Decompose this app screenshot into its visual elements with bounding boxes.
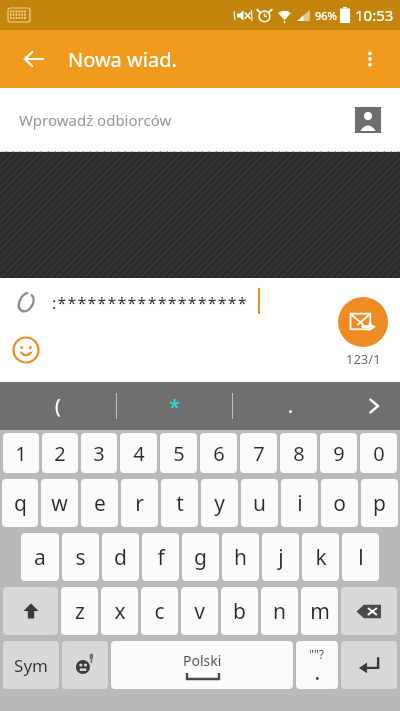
staticText: 6 <box>213 440 225 467</box>
staticText: m <box>310 597 330 626</box>
staticText: 10:53 <box>355 5 394 25</box>
staticText: . <box>315 662 320 685</box>
button[interactable]: d <box>102 533 139 581</box>
button[interactable]: s <box>62 533 99 581</box>
staticText: a <box>34 543 46 572</box>
staticText: ""? <box>309 646 325 662</box>
button[interactable]: w <box>41 479 78 527</box>
button[interactable]: y <box>201 479 238 527</box>
button[interactable]: 2 <box>42 433 78 473</box>
button[interactable]: m <box>301 587 338 635</box>
staticText: 96% <box>315 8 337 23</box>
button[interactable]: Attach <box>4 281 48 325</box>
staticText: 123/1 <box>346 350 381 368</box>
button[interactable]: x <box>101 587 138 635</box>
staticText: 8 <box>293 440 305 467</box>
button[interactable]: 5 <box>160 433 197 473</box>
button[interactable]: Send message <box>338 297 388 347</box>
staticText: n <box>273 597 286 626</box>
button[interactable]: z <box>61 587 98 635</box>
button[interactable]: u <box>241 479 278 527</box>
button[interactable]: Space <box>111 641 293 689</box>
button[interactable]: e <box>81 479 118 527</box>
button[interactable]: Emoji <box>4 328 48 372</box>
button[interactable]: . <box>233 382 348 430</box>
button[interactable]: Backspace <box>341 587 397 635</box>
button[interactable]: 9 <box>320 433 357 473</box>
staticText: 2 <box>54 440 66 467</box>
staticText: x <box>114 597 126 626</box>
staticText: q <box>14 489 27 518</box>
staticText: Polski <box>183 651 222 670</box>
button[interactable]: 1 <box>3 433 39 473</box>
button[interactable]: k <box>302 533 339 581</box>
button[interactable]: b <box>221 587 258 635</box>
button[interactable]: * <box>117 382 232 430</box>
staticText: y <box>214 489 225 518</box>
button[interactable]: r <box>121 479 158 527</box>
staticText: v <box>194 597 205 626</box>
staticText: :******************* <box>52 292 248 314</box>
staticText: c <box>154 597 165 626</box>
staticText: Nowa wiad. <box>68 46 177 73</box>
button[interactable]: Shift <box>3 587 58 635</box>
staticText: ( <box>55 393 61 419</box>
staticText: b <box>233 597 246 626</box>
staticText: o <box>333 489 346 518</box>
button[interactable]: Back <box>10 35 58 83</box>
staticText: 3 <box>93 440 105 467</box>
staticText: k <box>315 543 327 572</box>
button[interactable]: i <box>281 479 318 527</box>
staticText: h <box>234 543 247 572</box>
button[interactable]: 6 <box>200 433 237 473</box>
button[interactable]: 8 <box>280 433 317 473</box>
button[interactable]: t <box>161 479 198 527</box>
staticText: Sym <box>14 654 48 677</box>
staticText: e <box>94 489 106 518</box>
staticText: Wprowadź odbiorców <box>19 110 172 130</box>
button[interactable]: v <box>181 587 218 635</box>
staticText: 5 <box>173 440 185 467</box>
button[interactable]: q <box>2 479 38 527</box>
button[interactable]: Punctuation <box>296 641 338 689</box>
button[interactable]: ( <box>0 382 116 430</box>
staticText: 7 <box>253 440 265 467</box>
staticText: z <box>75 597 85 626</box>
button[interactable]: Emoji and voice input <box>62 641 108 689</box>
button[interactable]: a <box>21 533 59 581</box>
staticText: g <box>194 543 207 572</box>
button[interactable]: g <box>182 533 219 581</box>
button[interactable]: Sym <box>3 641 59 689</box>
button[interactable]: 0 <box>360 433 397 473</box>
staticText: s <box>75 543 86 572</box>
staticText: 1 <box>15 440 27 467</box>
staticText: 0 <box>373 440 385 467</box>
button[interactable]: h <box>222 533 259 581</box>
staticText: r <box>135 489 144 518</box>
button[interactable]: Wprowadź odbiorców <box>0 88 400 152</box>
staticText: w <box>51 489 68 518</box>
button[interactable]: f <box>142 533 179 581</box>
button[interactable]: n <box>261 587 298 635</box>
button[interactable]: o <box>321 479 358 527</box>
staticText: p <box>373 489 386 518</box>
staticText: l <box>358 543 364 572</box>
button[interactable]: More suggestions <box>348 382 400 430</box>
staticText: j <box>278 543 284 572</box>
staticText: 9 <box>333 440 345 467</box>
button[interactable]: 7 <box>240 433 277 473</box>
button[interactable]: 4 <box>120 433 157 473</box>
button[interactable]: c <box>141 587 178 635</box>
staticText: u <box>253 489 266 518</box>
button[interactable]: p <box>361 479 398 527</box>
button[interactable]: l <box>342 533 379 581</box>
button[interactable]: 3 <box>81 433 117 473</box>
staticText: 4 <box>133 440 145 467</box>
staticText: t <box>176 489 184 518</box>
staticText: . <box>288 393 294 419</box>
button[interactable]: Add contact <box>346 98 390 142</box>
button[interactable]: Enter <box>341 641 397 689</box>
staticText: i <box>297 489 303 518</box>
button[interactable]: More options <box>346 35 394 83</box>
button[interactable]: j <box>262 533 299 581</box>
